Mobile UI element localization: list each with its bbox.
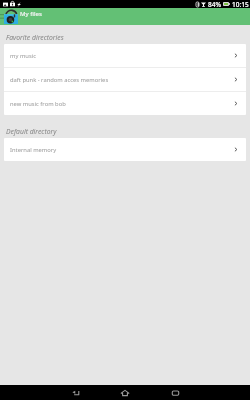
button[interactable]: daft punk - random acces memories xyxy=(4,68,246,91)
staticText: Default directory xyxy=(6,127,57,136)
staticText: new music from bob xyxy=(10,100,235,108)
staticText: Favorite directories xyxy=(6,33,64,42)
button[interactable]: Back xyxy=(50,385,100,400)
staticText: daft punk - random acces memories xyxy=(10,76,235,84)
staticText: 10:15 xyxy=(232,0,249,8)
staticText: 84% xyxy=(208,0,221,8)
button[interactable]: new music from bob xyxy=(4,92,246,115)
staticText: Internal memory xyxy=(10,146,235,154)
button[interactable]: Home xyxy=(100,385,150,400)
staticText: my music xyxy=(10,52,235,60)
staticText: My files xyxy=(20,9,42,17)
button[interactable]: my music xyxy=(4,44,246,67)
button[interactable]: Internal memory xyxy=(4,138,246,161)
button[interactable]: Recent apps xyxy=(150,385,200,400)
